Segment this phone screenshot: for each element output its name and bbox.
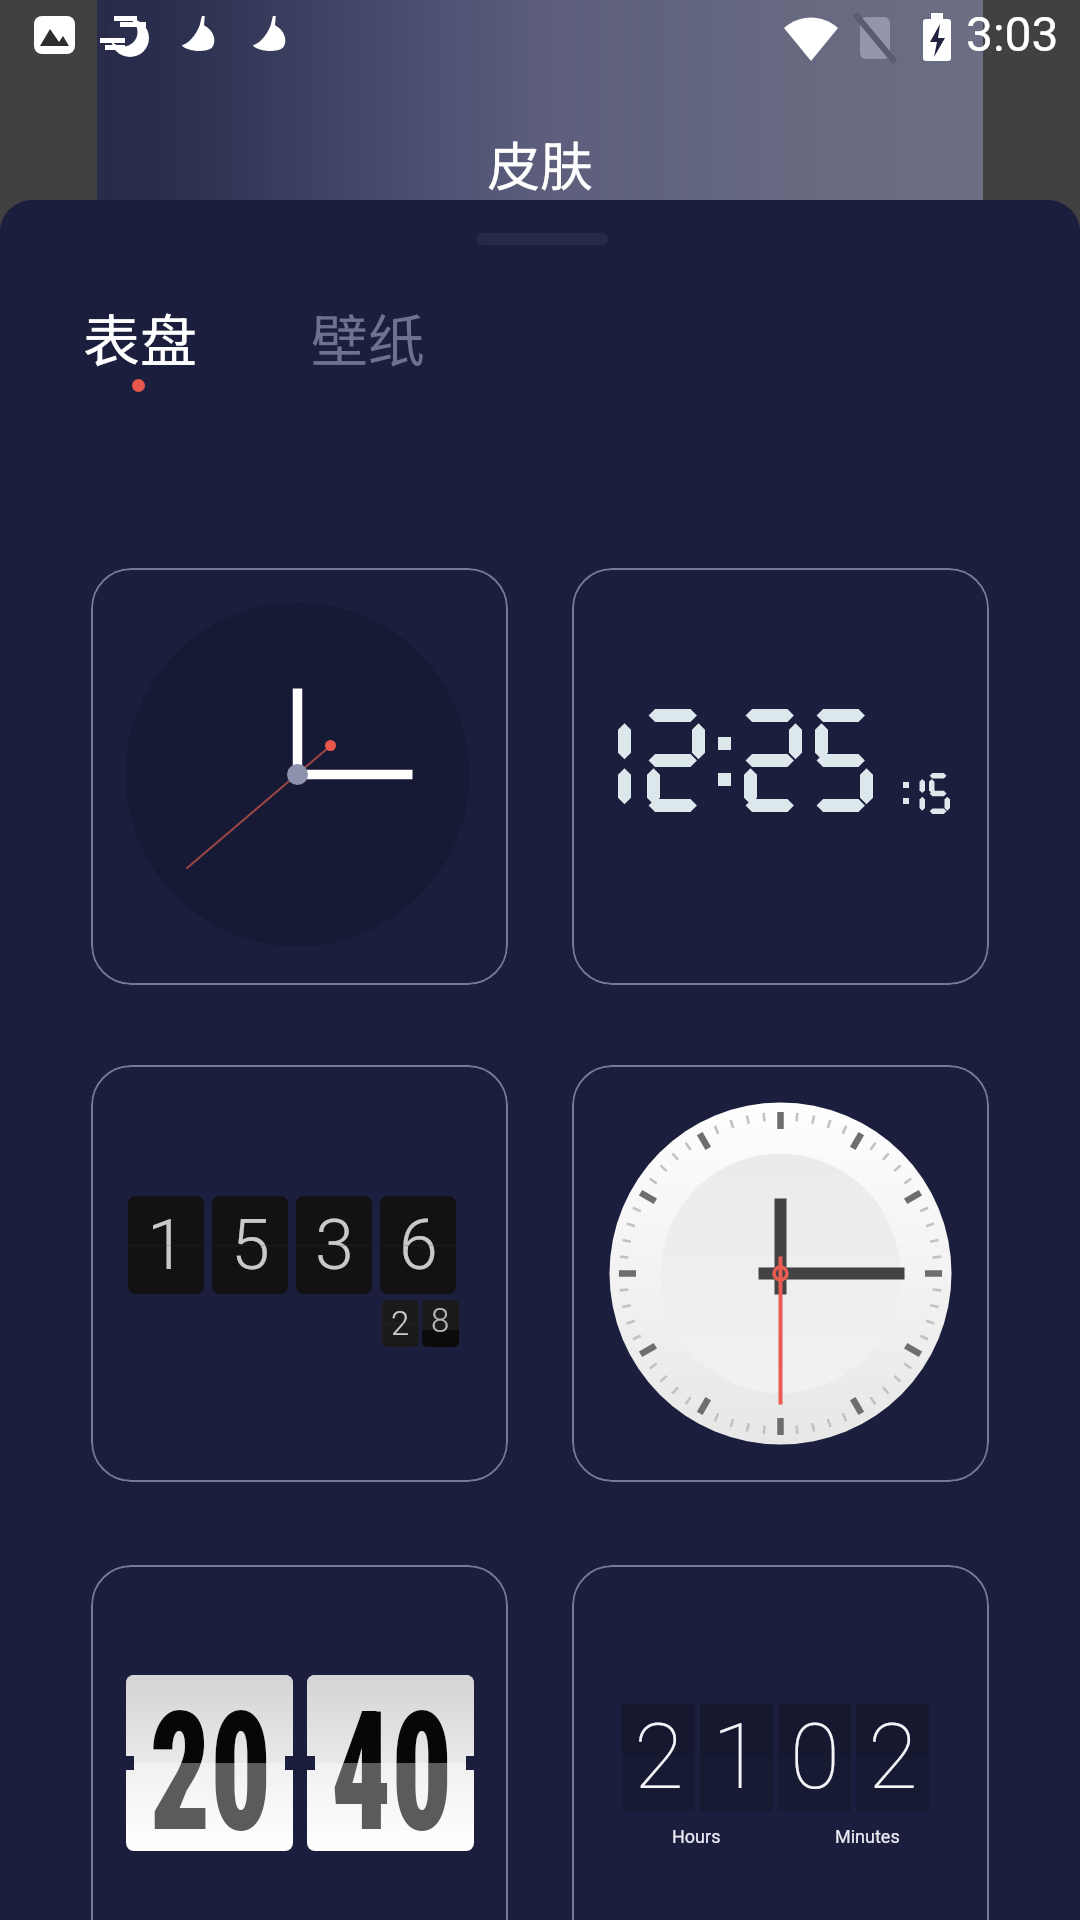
- staticText: 皮肤: [487, 125, 593, 201]
- staticText: 1: [147, 1204, 186, 1286]
- button[interactable]: Countdown flip watch face: [572, 1565, 989, 1920]
- button[interactable]: 壁纸: [287, 278, 447, 406]
- staticText: 3:03: [966, 6, 1059, 62]
- button[interactable]: Retro flip watch face: [91, 1565, 508, 1920]
- staticText: 20: [150, 1675, 269, 1851]
- staticText: 6: [399, 1204, 438, 1286]
- staticText: 2: [634, 1704, 684, 1811]
- staticText: Hours: [672, 1826, 721, 1847]
- staticText: 2: [391, 1304, 410, 1343]
- staticText: 壁纸: [311, 296, 425, 379]
- button[interactable]: Digital LCD watch face: [572, 568, 989, 985]
- button[interactable]: Classic analog watch face: [572, 1065, 989, 1482]
- staticText: 1: [712, 1704, 762, 1811]
- staticText: 40: [331, 1675, 450, 1763]
- button[interactable]: Minimal analog watch face: [91, 568, 508, 985]
- staticText: 0: [790, 1704, 840, 1811]
- staticText: 2: [868, 1704, 918, 1811]
- staticText: 8: [431, 1301, 450, 1340]
- staticText: 表盘: [83, 296, 197, 379]
- staticText: 40: [331, 1675, 450, 1851]
- button[interactable]: Dark flip clock watch face: [91, 1065, 508, 1482]
- staticText: 3: [315, 1204, 354, 1286]
- staticText: Minutes: [835, 1826, 900, 1847]
- staticText: 5: [231, 1204, 270, 1286]
- staticText: 20: [150, 1675, 269, 1763]
- button[interactable]: 表盘: [59, 278, 219, 406]
